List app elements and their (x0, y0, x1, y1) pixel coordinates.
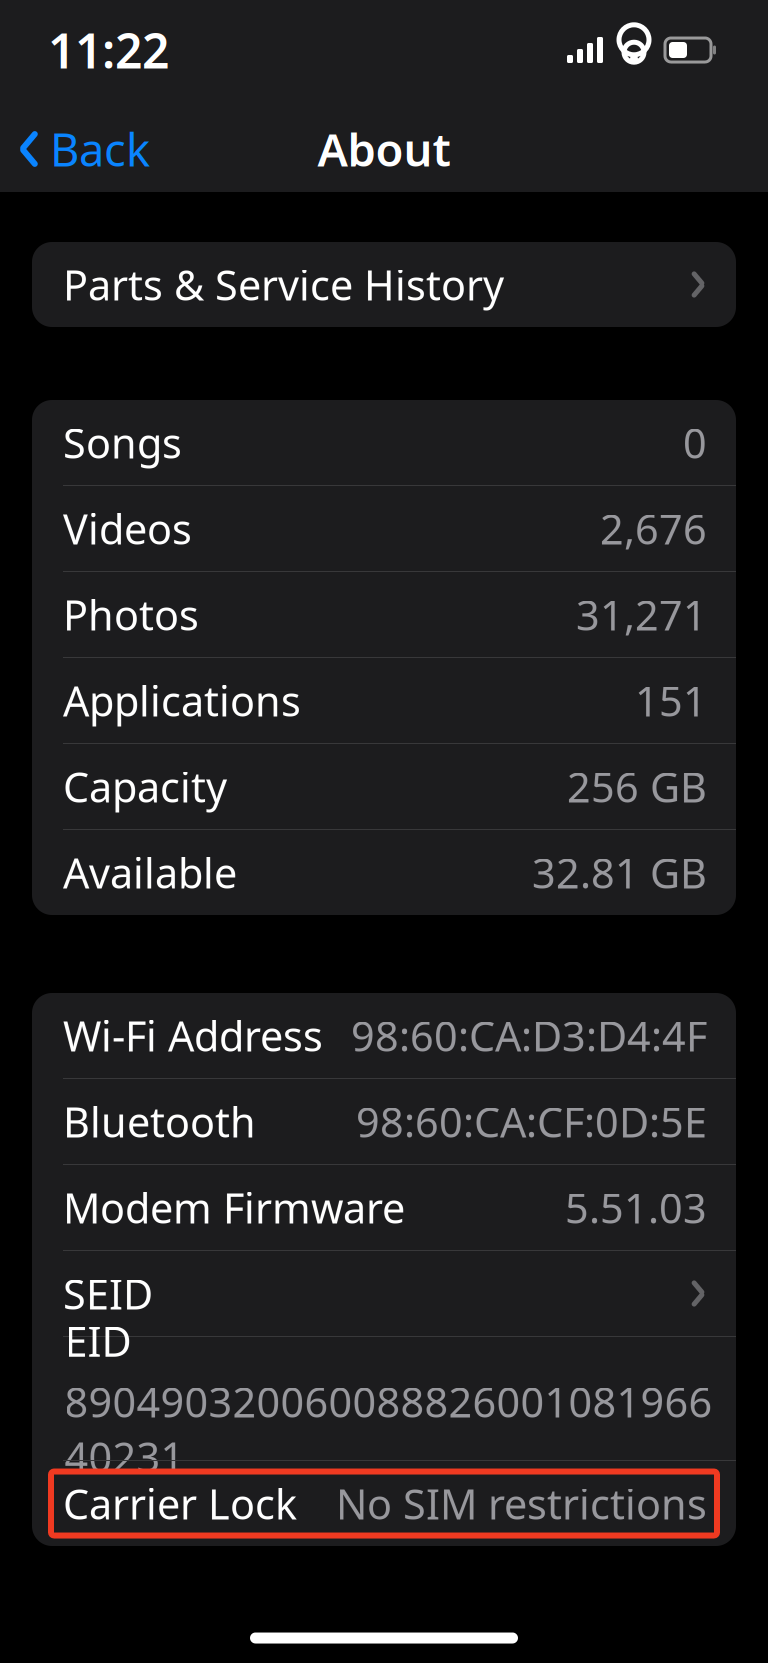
staticText: Carrier Lock (63, 1476, 297, 1531)
staticText: No SIM restrictions (336, 1476, 707, 1531)
staticText: 98:60:CA:D3:D4:4F (351, 1008, 707, 1063)
staticText: 32.81 GB (532, 845, 707, 900)
staticText: SEID (63, 1266, 153, 1321)
staticText: Back (50, 119, 150, 179)
staticText: Bluetooth (63, 1094, 256, 1149)
button[interactable]: Songs (32, 400, 736, 485)
staticText: Available (63, 845, 237, 900)
staticText: 151 (635, 673, 707, 728)
button[interactable]: Back (0, 109, 150, 189)
button[interactable]: Bluetooth (32, 1079, 736, 1164)
staticText: 98:60:CA:CF:0D:5E (356, 1094, 707, 1149)
staticText: Photos (63, 587, 199, 642)
staticText: 0 (683, 415, 707, 470)
button[interactable]: Capacity (32, 744, 736, 829)
staticText: Parts & Service History (63, 257, 504, 312)
staticText: 5.51.03 (565, 1180, 707, 1235)
button[interactable]: Modem Firmware (32, 1165, 736, 1250)
button[interactable]: SEID (32, 1251, 736, 1336)
staticText: Applications (63, 673, 301, 728)
staticText: 89049032006008882600108196640231 (64, 1374, 712, 1484)
button[interactable]: EID (33, 1337, 734, 1460)
button[interactable]: Wi-Fi Address (32, 993, 736, 1078)
staticText: Songs (63, 415, 182, 470)
staticText: Wi-Fi Address (63, 1008, 323, 1063)
staticText: EID (64, 1313, 131, 1368)
staticText: 31,271 (576, 587, 707, 642)
button[interactable]: Photos (32, 572, 736, 657)
staticText: About (317, 119, 450, 179)
button[interactable]: Videos (32, 486, 736, 571)
staticText: 2,676 (600, 501, 707, 556)
staticText: Modem Firmware (63, 1180, 405, 1235)
staticText: 11:22 (48, 18, 169, 82)
button[interactable]: Parts & Service History (32, 242, 736, 327)
staticText: 256 GB (567, 759, 707, 814)
button[interactable]: Applications (32, 658, 736, 743)
staticText: Capacity (63, 759, 227, 814)
staticText: Videos (63, 501, 192, 556)
button[interactable]: Carrier Lock (32, 1461, 736, 1546)
button[interactable]: Available (32, 830, 736, 915)
